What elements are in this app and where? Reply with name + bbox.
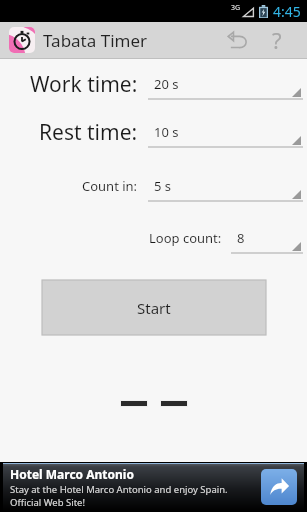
staticText: Start (137, 298, 171, 318)
staticText: ? (272, 25, 282, 55)
staticText: Stay at the Hotel Marco Antonio and enjo… (10, 483, 228, 496)
staticText: 3G (231, 3, 241, 13)
button[interactable]: 20 s (148, 68, 303, 100)
button[interactable]: 10 s (148, 116, 303, 148)
staticText: Official Web Site! (10, 496, 85, 509)
staticText: 5 s (154, 177, 172, 195)
button[interactable]: Reset (217, 22, 257, 58)
staticText: 4:45 (273, 2, 301, 21)
staticText: Count in: (82, 177, 138, 195)
staticText: Loop count: (149, 229, 222, 247)
staticText: Rest time: (39, 118, 138, 147)
button[interactable]: Open ad (261, 469, 297, 505)
staticText: Tabata Timer (43, 29, 148, 52)
button[interactable]: Start (42, 280, 266, 335)
staticText: 10 s (154, 123, 179, 141)
button[interactable]: Help (257, 22, 297, 58)
staticText: Work time: (30, 70, 138, 99)
button[interactable]: 5 s (148, 170, 303, 202)
button[interactable]: 8 (231, 222, 303, 254)
staticText: Hotel Marco Antonio (10, 466, 134, 482)
button[interactable]: Hotel Marco Antonio (3, 463, 304, 511)
staticText: 8 (237, 229, 245, 247)
staticText: 20 s (154, 75, 179, 93)
